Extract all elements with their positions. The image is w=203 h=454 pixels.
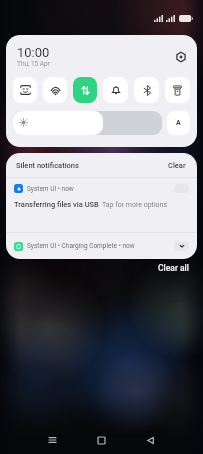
- button[interactable]: Flashlight: [165, 77, 190, 103]
- button[interactable]: System UI • now: [6, 178, 197, 232]
- button[interactable]: Mobile data: [73, 77, 97, 103]
- staticText: Clear: [168, 161, 186, 170]
- button[interactable]: Expand: [174, 241, 189, 251]
- button[interactable]: Home: [88, 427, 114, 453]
- staticText: System UI • now: [27, 185, 174, 193]
- staticText: System UI • Charging Complete • now: [27, 242, 174, 250]
- button[interactable]: Brightness: [13, 111, 162, 135]
- button[interactable]: Bluetooth: [134, 77, 159, 103]
- button[interactable]: Clear all: [155, 261, 192, 275]
- button[interactable]: Screen cast: [13, 77, 37, 103]
- button[interactable]: Wi-Fi: [43, 77, 67, 103]
- button[interactable]: Do not disturb: [103, 77, 128, 103]
- button[interactable]: Settings: [172, 48, 189, 65]
- staticText: Thu, 15 Apr: [17, 60, 50, 68]
- button[interactable]: Back: [137, 427, 163, 453]
- staticText: A: [176, 119, 181, 127]
- button[interactable]: Clear: [166, 160, 188, 171]
- staticText: 10:00: [17, 45, 50, 60]
- staticText: Transferring files via USB: [14, 200, 99, 209]
- button[interactable]: Recents: [39, 427, 65, 453]
- staticText: Tap for more options: [102, 201, 168, 209]
- staticText: Silent notifications: [16, 161, 166, 170]
- staticText: Clear all: [158, 263, 189, 273]
- button[interactable]: System UI • Charging Complete • now: [6, 233, 197, 259]
- button[interactable]: Auto brightness: [167, 111, 190, 135]
